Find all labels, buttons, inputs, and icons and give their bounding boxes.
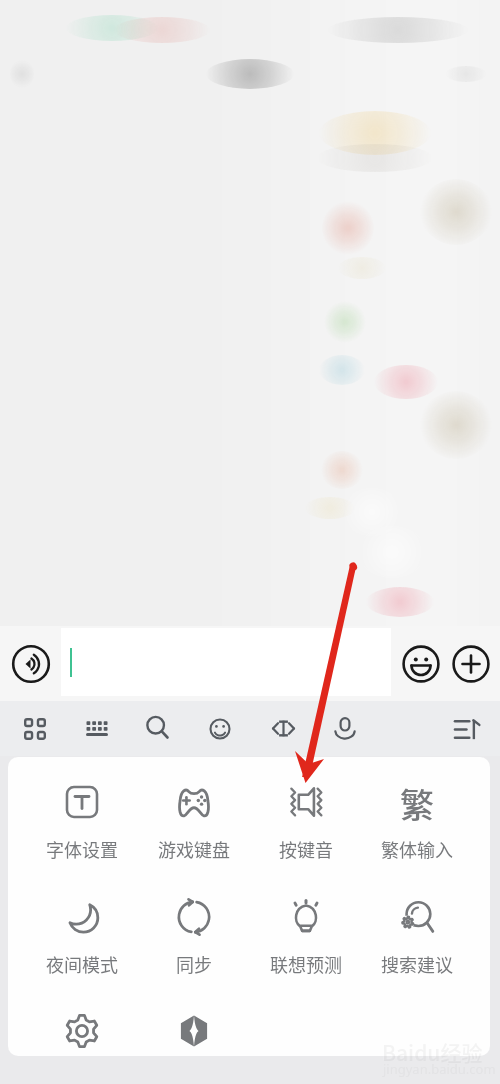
button[interactable]: More functions xyxy=(448,641,493,686)
button[interactable]: Voice xyxy=(323,705,367,749)
staticText: 按键音 xyxy=(279,836,333,862)
button[interactable]: Search suggestions xyxy=(361,894,473,986)
button[interactable]: Move cursor xyxy=(261,706,305,750)
staticText: 联想预测 xyxy=(270,951,342,977)
button[interactable]: Plugins xyxy=(138,1008,250,1056)
button[interactable]: Voice input xyxy=(8,641,53,686)
staticText: 搜索建议 xyxy=(381,951,453,977)
button[interactable]: Search xyxy=(135,705,179,749)
button[interactable]: Keyboard xyxy=(75,706,119,750)
button[interactable]: Prediction xyxy=(250,894,362,986)
staticText: 同步 xyxy=(176,951,212,977)
button[interactable]: Settings menu xyxy=(444,707,488,751)
button[interactable]: Emoji xyxy=(198,707,242,751)
button[interactable]: Keyboard layouts xyxy=(13,707,57,751)
button[interactable]: Sync xyxy=(138,894,250,986)
button[interactable]: Night mode xyxy=(26,894,138,986)
button[interactable]: Message input xyxy=(61,628,391,696)
staticText: Baidu经验 xyxy=(381,1036,482,1066)
button[interactable]: Emoji xyxy=(398,641,443,686)
button[interactable]: Game keyboard xyxy=(138,779,250,871)
staticText: 夜间模式 xyxy=(46,951,118,977)
button[interactable]: Key sound xyxy=(250,779,362,871)
button[interactable]: Traditional input xyxy=(361,779,473,871)
staticText: 字体设置 xyxy=(46,836,118,862)
staticText: 繁 xyxy=(400,779,434,825)
staticText: Baidu经验 xyxy=(382,1037,483,1067)
button[interactable]: Font settings xyxy=(26,779,138,871)
staticText: 游戏键盘 xyxy=(158,836,230,862)
button[interactable]: Settings xyxy=(26,1008,138,1056)
staticText: 繁体输入 xyxy=(381,836,453,862)
